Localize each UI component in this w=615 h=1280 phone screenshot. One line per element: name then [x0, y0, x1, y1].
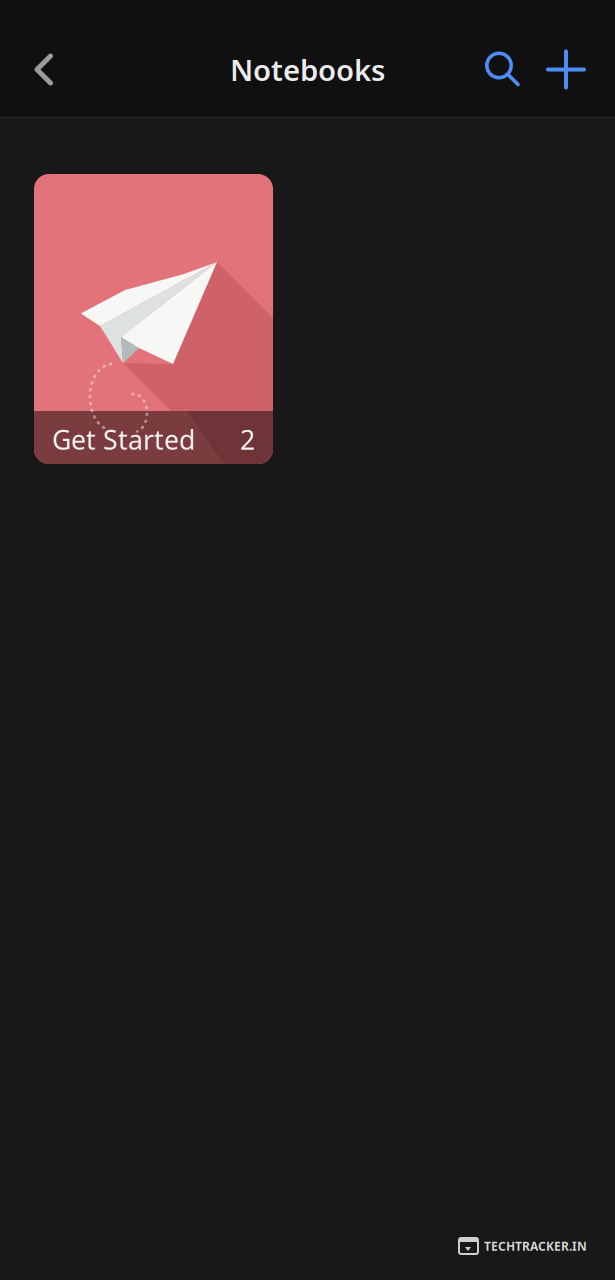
staticText: TECHTRACKER.IN [484, 1238, 587, 1254]
staticText: Notebooks [230, 50, 385, 89]
button[interactable]: Search [470, 34, 534, 104]
staticText: 2 [240, 422, 255, 457]
staticText: Get Started [52, 422, 195, 457]
button[interactable]: Back [18, 34, 70, 104]
button[interactable]: New notebook [534, 34, 598, 104]
button[interactable]: Get Started [34, 174, 273, 464]
